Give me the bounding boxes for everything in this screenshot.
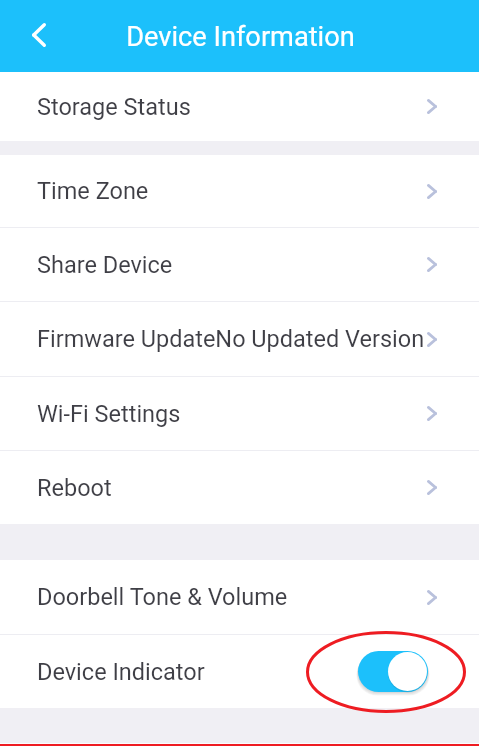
staticText: Share Device [37, 251, 173, 279]
staticText: Wi-Fi Settings [37, 400, 181, 428]
button[interactable]: Time Zone [0, 155, 479, 227]
button[interactable]: Share Device [0, 228, 479, 301]
button[interactable]: Doorbell Tone & Volume [0, 560, 479, 634]
staticText: Doorbell Tone & Volume [37, 583, 288, 611]
staticText: Firmware UpdateNo Updated Version [37, 325, 425, 353]
staticText: Time Zone [37, 177, 149, 205]
staticText: Device Information [126, 21, 355, 53]
button[interactable]: Wi-Fi Settings [0, 377, 479, 450]
button[interactable]: Back [17, 13, 61, 57]
button[interactable]: Device Indicator [0, 635, 479, 708]
staticText: Reboot [37, 474, 112, 502]
button[interactable]: Device indicator switch, on [358, 651, 428, 692]
button[interactable]: Storage Status [0, 72, 479, 141]
button[interactable]: Firmware UpdateNo Updated Version [0, 302, 479, 376]
staticText: Device Indicator [37, 658, 205, 686]
staticText: Storage Status [37, 93, 191, 121]
button[interactable]: Reboot [0, 451, 479, 524]
